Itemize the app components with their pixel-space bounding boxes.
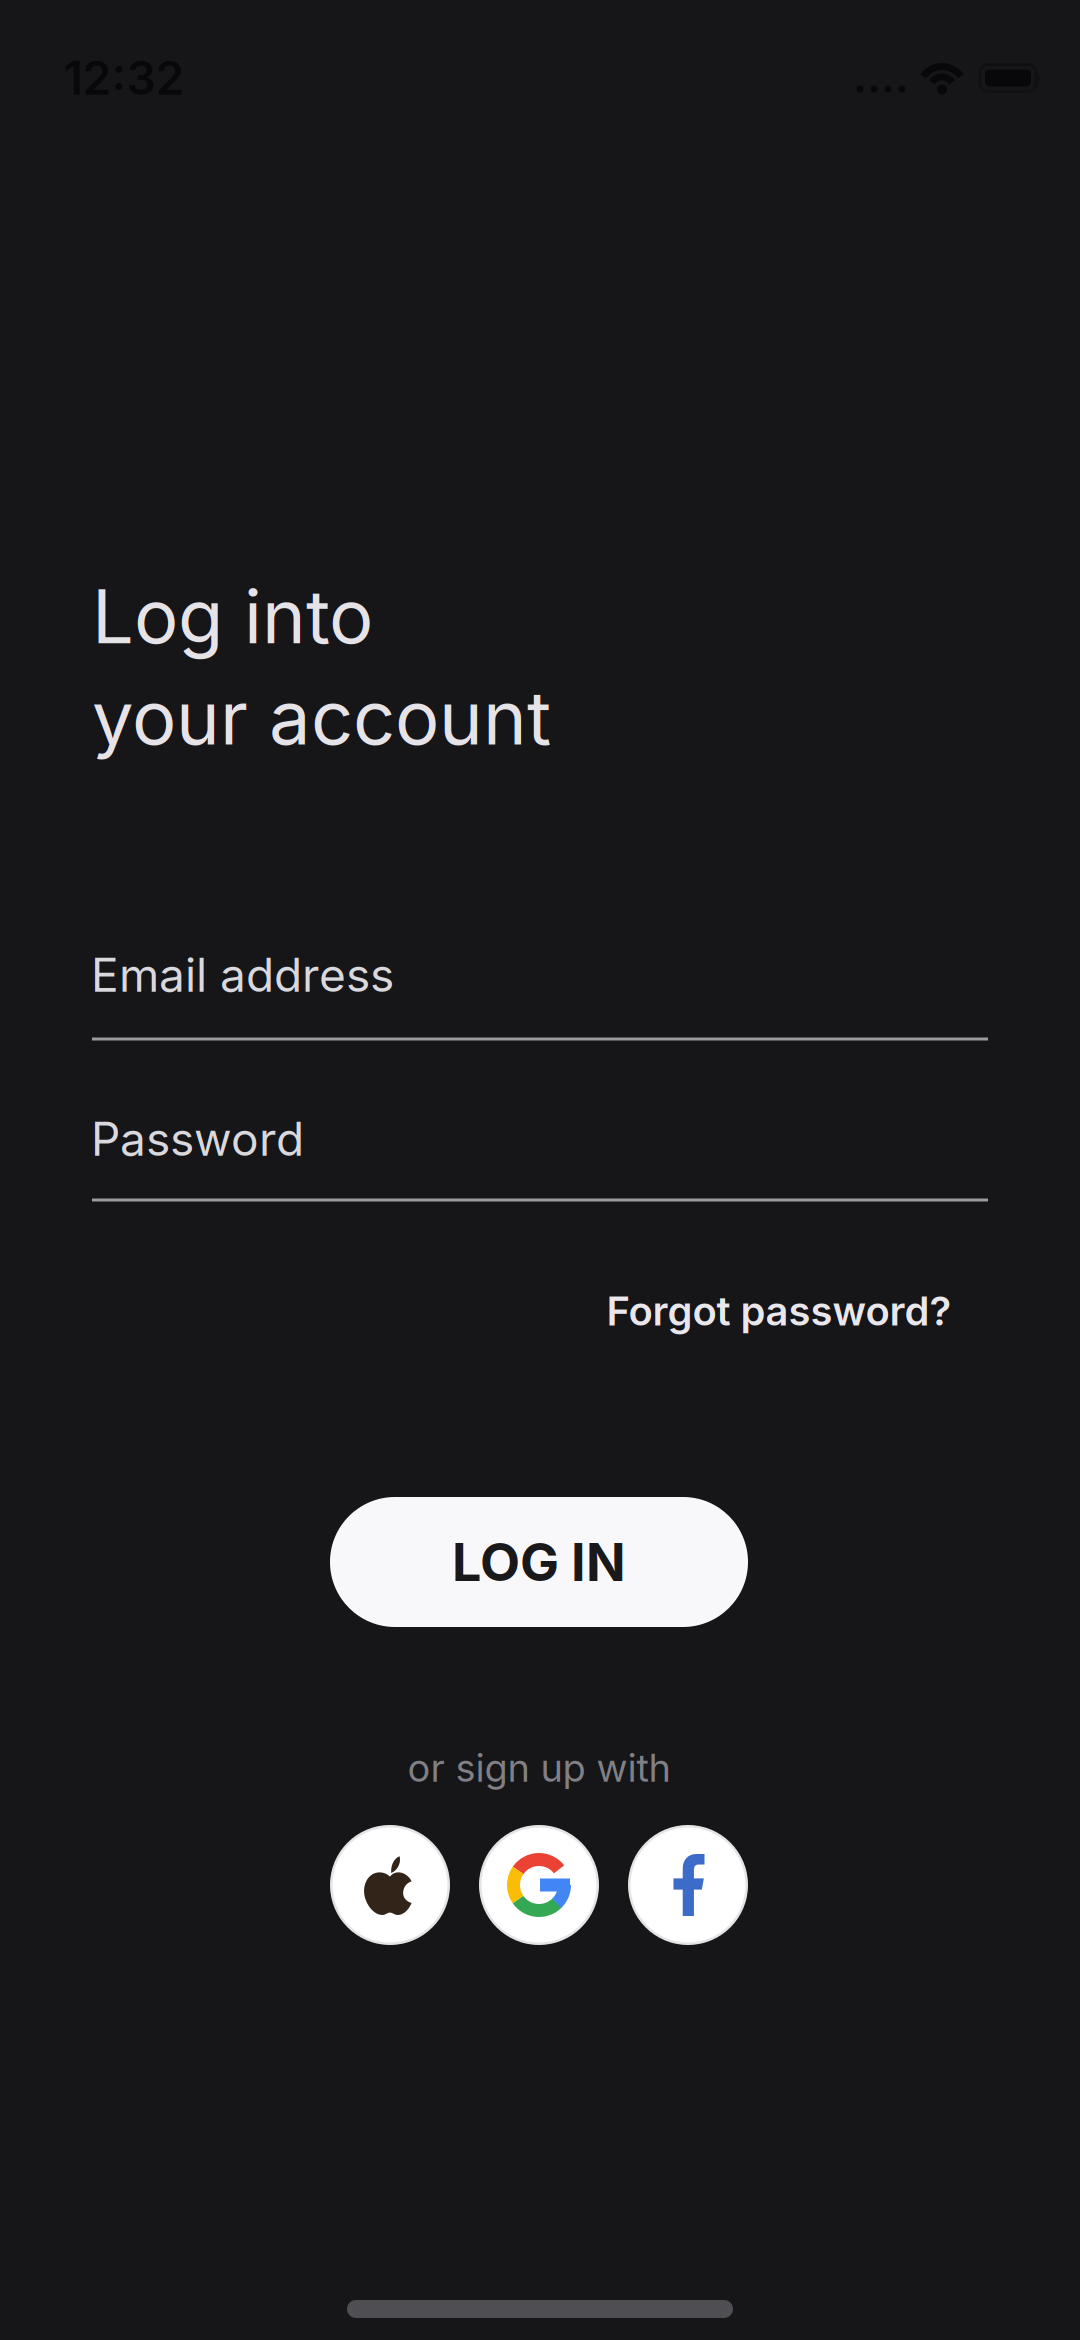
button[interactable]: Forgot password?	[606, 1287, 951, 1335]
staticText: 12:32	[63, 51, 184, 105]
staticText: Forgot password?	[606, 1287, 951, 1335]
staticText: Password	[91, 1112, 304, 1166]
staticText: Email address	[91, 948, 394, 1002]
button[interactable]	[330, 1825, 450, 1945]
staticText: your account	[92, 674, 551, 761]
staticText: or sign up with	[407, 1746, 670, 1790]
staticText: LOG IN	[452, 1531, 626, 1593]
button[interactable]	[479, 1825, 599, 1945]
button[interactable]	[628, 1825, 748, 1945]
staticText: Log into	[92, 573, 373, 660]
button[interactable]: LOG IN	[330, 1497, 748, 1627]
